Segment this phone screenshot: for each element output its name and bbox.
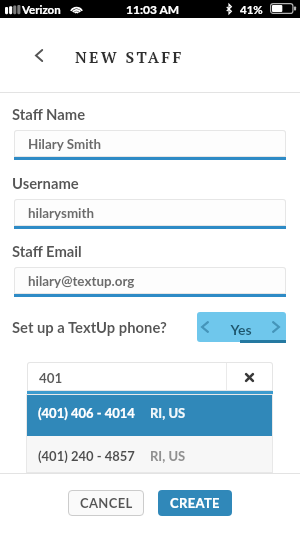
staticText: RI, US — [150, 405, 186, 421]
button[interactable]: CANCEL — [68, 490, 144, 516]
button[interactable]: Previous — [197, 312, 286, 342]
button[interactable]: 401 — [27, 362, 273, 391]
staticText: RI, US — [150, 448, 186, 464]
button[interactable]: (401) 240 - 4857 — [27, 436, 273, 473]
staticText: Yes — [225, 321, 257, 338]
button[interactable]: Back — [25, 43, 52, 67]
staticText: hilarysmith — [28, 205, 95, 221]
staticText: Staff Email — [12, 242, 82, 260]
button[interactable]: (401) 406 - 4014 — [27, 395, 273, 436]
staticText: NEW STAFF — [75, 47, 184, 68]
button[interactable]: Next — [266, 312, 286, 342]
staticText: 11:03 AM — [126, 2, 180, 16]
button[interactable]: Previous — [197, 312, 215, 342]
staticText: 41% — [240, 3, 263, 17]
staticText: CANCEL — [80, 495, 133, 511]
staticText: 401 — [39, 370, 63, 386]
staticText: (401) 406 - 4014 — [38, 405, 135, 421]
button[interactable]: hilary@textup.org — [14, 267, 286, 294]
staticText: Username — [12, 174, 79, 192]
staticText: Set up a TextUp phone? — [12, 318, 167, 336]
button[interactable]: hilarysmith — [14, 199, 286, 226]
staticText: Hilary Smith — [28, 136, 102, 152]
button[interactable]: CREATE — [158, 490, 232, 516]
staticText: CREATE — [170, 495, 220, 511]
button[interactable]: Clear — [240, 368, 258, 386]
staticText: Staff Name — [12, 105, 86, 123]
staticText: hilary@textup.org — [28, 273, 135, 289]
staticText: (401) 240 - 4857 — [38, 448, 135, 464]
staticText: Verizon — [22, 3, 61, 17]
button[interactable]: Hilary Smith — [14, 130, 286, 157]
